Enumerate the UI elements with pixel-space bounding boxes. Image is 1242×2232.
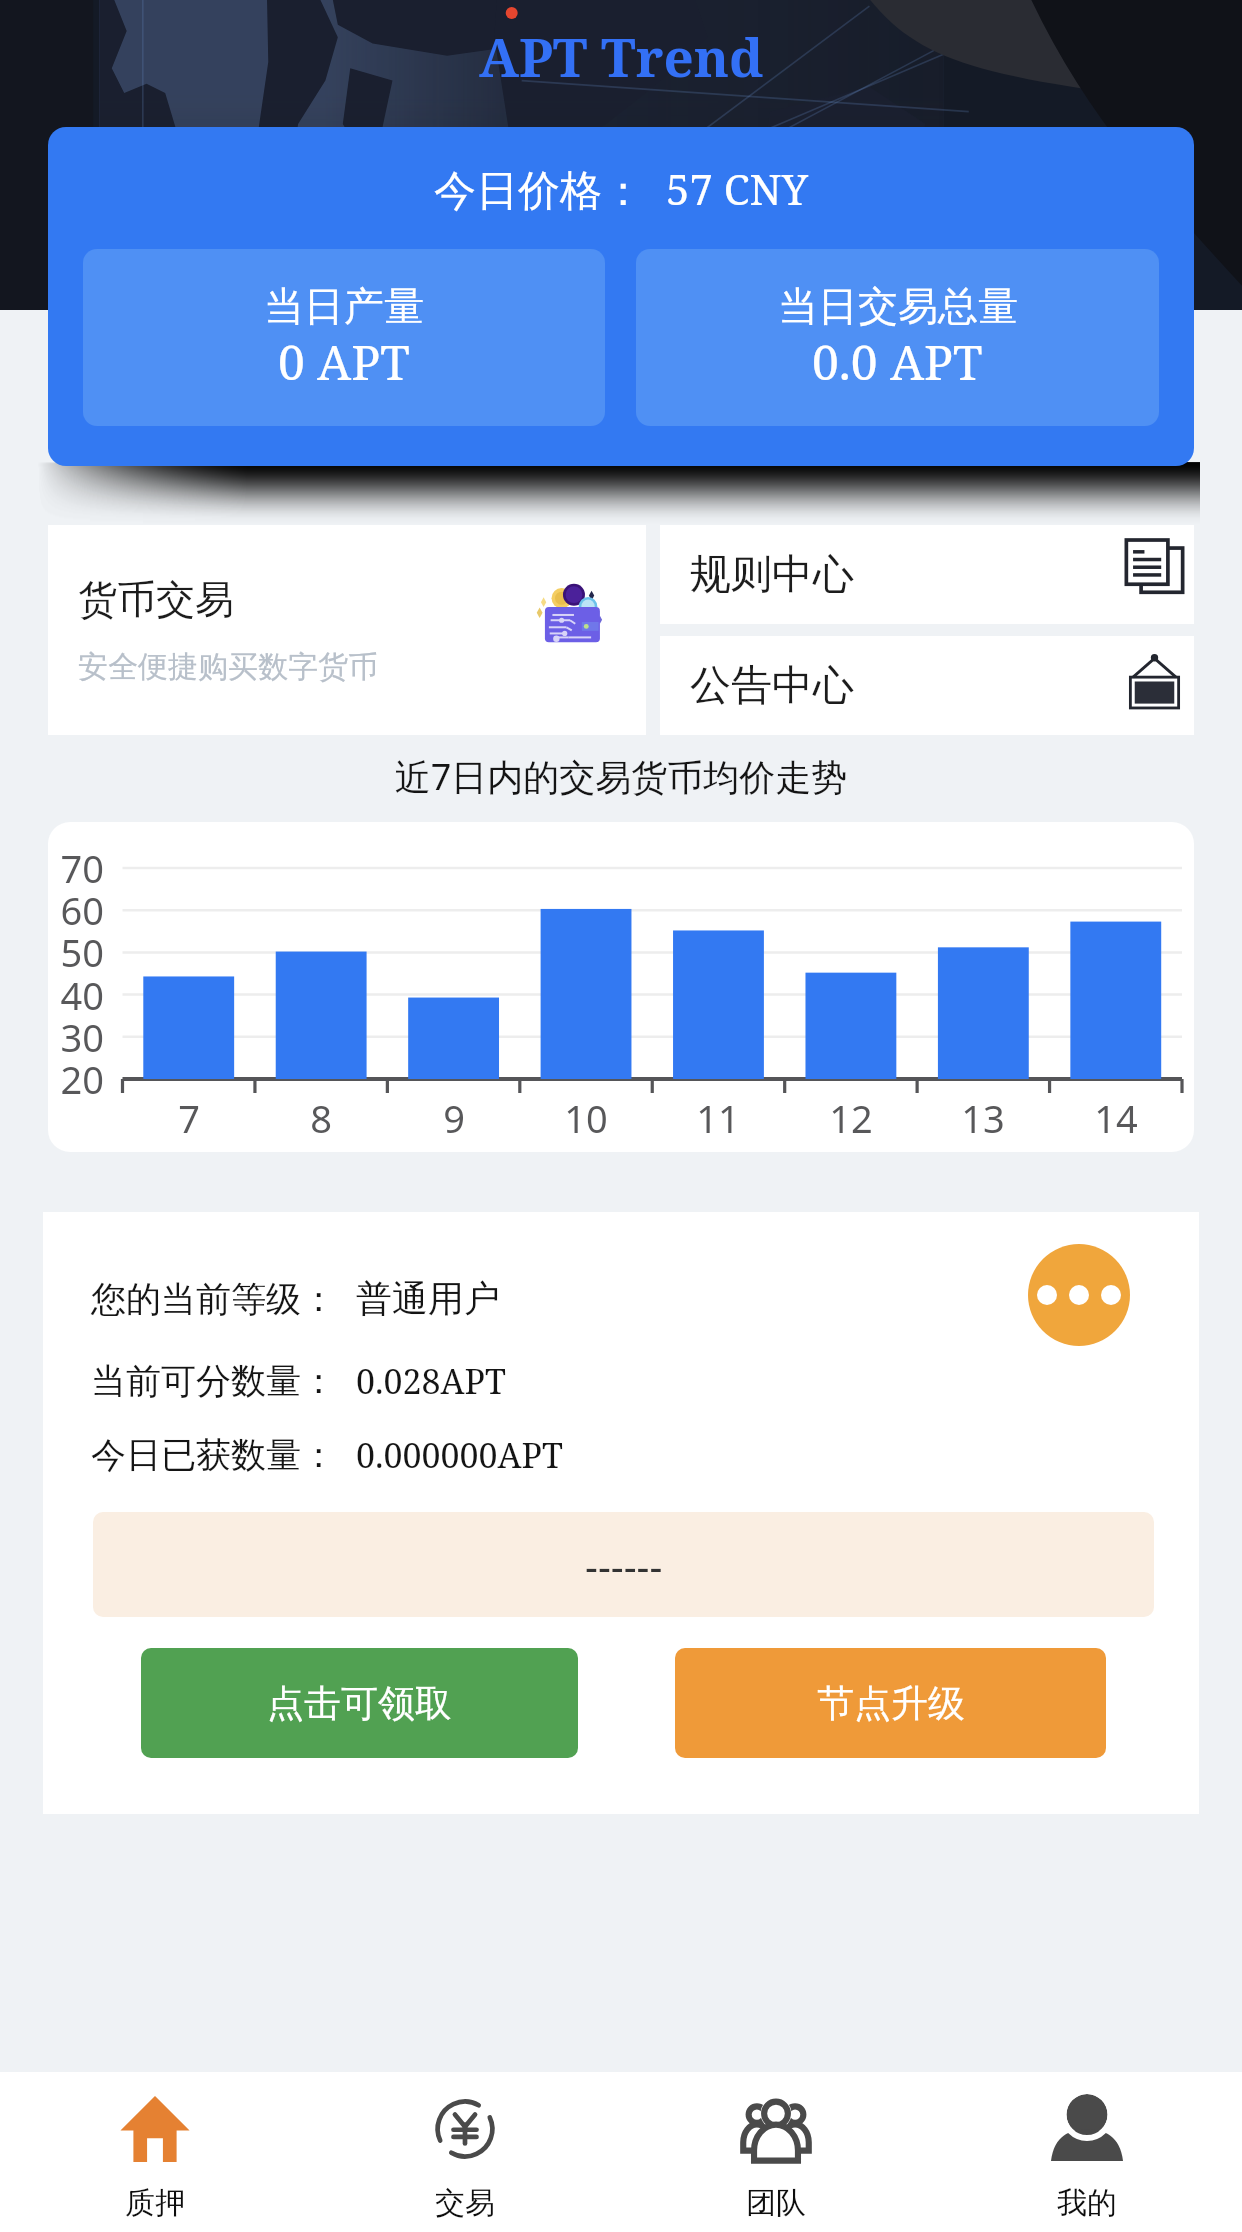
staticText: APT Trend [479, 20, 764, 92]
staticText: ------ [585, 1538, 663, 1592]
button[interactable]: 货币交易 [48, 525, 646, 735]
staticText: 当前可分数量： [91, 1359, 336, 1403]
staticText: 14 [1056, 1092, 1176, 1144]
button[interactable]: 点击可领取 [141, 1648, 578, 1758]
staticText: 50 [48, 926, 104, 978]
staticText: 货币交易 [78, 575, 234, 624]
staticText: 0.000000APT [356, 1432, 563, 1478]
staticText: 交易 [435, 2184, 495, 2222]
staticText: 当日交易总量 [778, 281, 1018, 331]
staticText: 30 [48, 1011, 104, 1063]
staticText: 您的当前等级： [91, 1277, 336, 1321]
staticText: 点击可领取 [267, 1680, 452, 1727]
staticText: 普通用户 [356, 1276, 500, 1321]
staticText: 13 [923, 1092, 1043, 1144]
button[interactable]: 当日产量 [83, 249, 605, 426]
staticText: 10 [526, 1092, 646, 1144]
staticText: 规则中心 [690, 549, 854, 601]
other: 公告中心 [1121, 649, 1188, 716]
staticText: 公告中心 [690, 660, 854, 712]
staticText: 节点升级 [817, 1680, 965, 1727]
staticText: 20 [48, 1053, 104, 1105]
staticText: 70 [48, 842, 104, 894]
staticText: 40 [48, 969, 104, 1021]
staticText: 今日价格： 57 CNY [48, 160, 1194, 217]
staticText: 12 [791, 1092, 911, 1144]
button[interactable]: 公告中心 [660, 636, 1194, 735]
staticText: 0 APT [278, 329, 410, 394]
other: 规则中心 [1121, 536, 1188, 603]
staticText: 0.028APT [356, 1358, 506, 1404]
staticText: 0.0 APT [812, 329, 983, 394]
button[interactable]: 当日交易总量 [636, 249, 1159, 426]
button[interactable]: 更多 [1028, 1244, 1130, 1346]
button[interactable]: 规则中心 [660, 525, 1194, 624]
staticText: 质押 [125, 2184, 185, 2222]
staticText: 8 [261, 1092, 381, 1144]
button[interactable]: 团队 [620, 2072, 931, 2232]
staticText: 9 [394, 1092, 514, 1144]
staticText: 团队 [746, 2184, 806, 2222]
button[interactable]: 我的 [931, 2072, 1242, 2232]
staticText: 今日已获数量： [91, 1433, 336, 1477]
staticText: 7 [129, 1092, 249, 1144]
staticText: 当日产量 [264, 281, 424, 331]
staticText: 60 [48, 884, 104, 936]
staticText: 近7日内的交易货币均价走势 [0, 752, 1242, 801]
staticText: 安全便捷购买数字货币 [78, 648, 378, 686]
staticText: 11 [658, 1092, 778, 1144]
button[interactable]: 节点升级 [675, 1648, 1106, 1758]
button[interactable]: 交易 [310, 2072, 620, 2232]
button[interactable]: 质押 [0, 2072, 310, 2232]
staticText: 我的 [1057, 2184, 1117, 2222]
